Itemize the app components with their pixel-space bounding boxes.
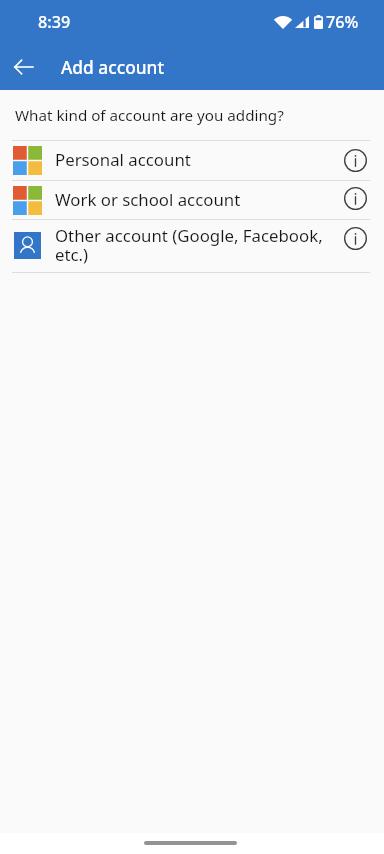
button[interactable]: Work or school account [0, 181, 384, 219]
staticText: What kind of account are you adding? [15, 105, 284, 126]
button[interactable]: Personal account [0, 141, 384, 180]
staticText: Work or school account [55, 188, 241, 211]
staticText: 76% [326, 11, 359, 33]
staticText: Personal account [55, 148, 191, 171]
button[interactable]: Other account (Google, Facebook, etc.) [0, 220, 384, 272]
staticText: Other account (Google, Facebook, etc.) [55, 224, 333, 266]
button[interactable]: More information about Other account (Go… [339, 220, 372, 272]
button[interactable]: Navigate up [3, 47, 43, 87]
button[interactable]: More information about Personal account [339, 141, 372, 180]
staticText: 8:39 [38, 11, 71, 33]
staticText: Add account [61, 56, 165, 80]
button[interactable]: More information about Work or school ac… [339, 181, 372, 219]
